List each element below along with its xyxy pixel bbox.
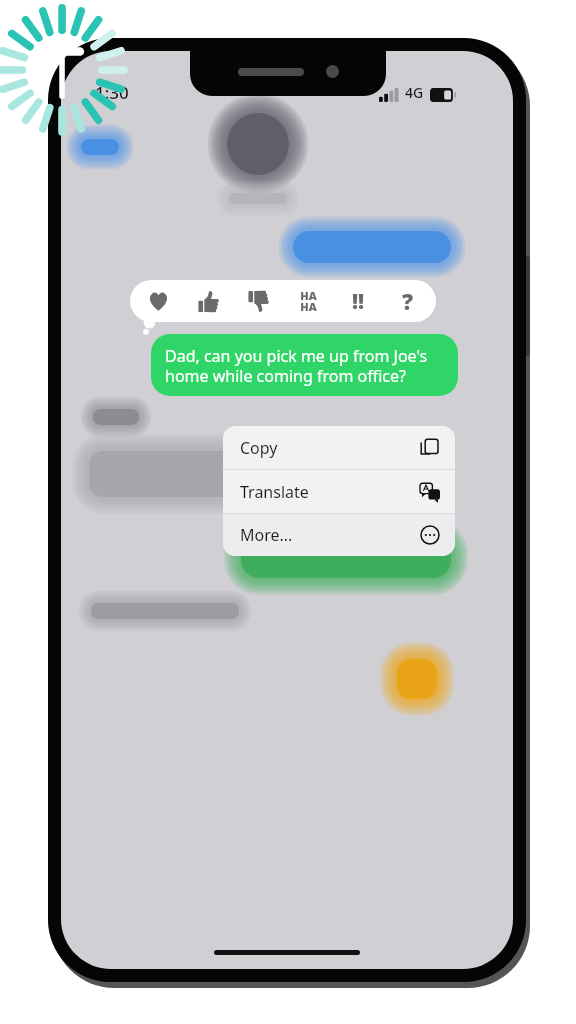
staticText: More... [240,524,293,546]
button[interactable]: thumbdown [236,280,280,322]
button[interactable]: thumbup [186,280,230,322]
button[interactable]: haha [286,280,330,322]
staticText: 4G [405,83,424,102]
staticText: Dad, can you pick me up from Joe's home … [165,345,428,386]
staticText: Translate [240,481,309,503]
staticText: 1:30 [95,81,129,104]
staticText: HA HA [300,288,317,314]
button[interactable]: heart [136,280,180,322]
button[interactable]: More... [223,514,455,556]
button[interactable]: Translate [223,470,455,513]
staticText: Copy [240,437,278,459]
staticText: ? [402,286,414,316]
button[interactable]: Copy [223,426,455,469]
button[interactable]: bangbang [336,280,380,322]
button[interactable]: question [386,280,430,322]
button[interactable]: Dad, can you pick me up from Joe's home … [151,334,458,396]
button[interactable]: heart [130,280,436,322]
staticText: !! [352,287,365,316]
